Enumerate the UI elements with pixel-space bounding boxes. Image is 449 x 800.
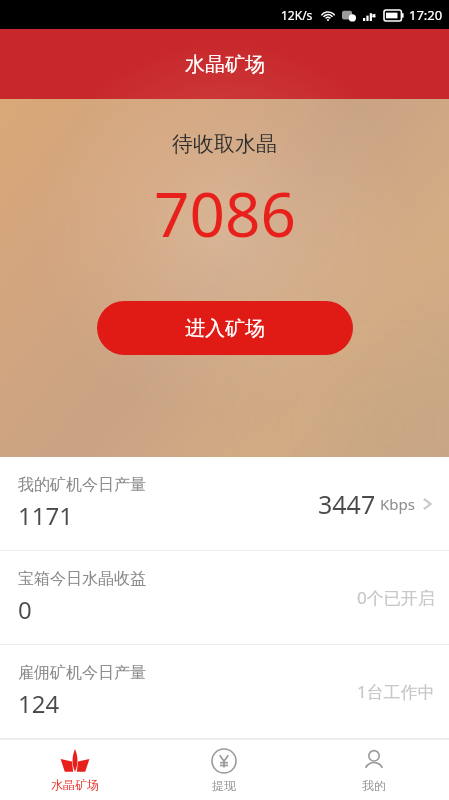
staticText: 7086 [154,171,296,255]
staticText: 我的 [362,778,386,793]
staticText: 0 [18,593,32,626]
staticText: 124 [18,687,60,720]
staticText: 1171 [18,499,73,532]
button[interactable]: 我的矿机今日产量 [0,457,449,550]
staticText: 12K/s [281,7,313,23]
button[interactable]: 宝箱今日水晶收益 [0,551,449,644]
staticText: 1台工作中 [357,680,435,703]
button[interactable]: 水晶矿场 [0,740,149,800]
staticText: 17:20 [409,6,443,24]
button[interactable]: 进入矿场 [97,301,353,355]
staticText: 待收取水晶 [172,131,277,157]
staticText: 我的矿机今日产量 [18,475,146,495]
staticText: 水晶矿场 [51,777,99,792]
staticText: 提现 [212,778,236,793]
staticText: 宝箱今日水晶收益 [18,569,146,589]
staticText: 水晶矿场 [185,52,265,77]
staticText: 0个已开启 [357,586,435,609]
button[interactable]: 雇佣矿机今日产量 [0,645,449,738]
button[interactable]: 我的 [299,740,449,800]
staticText: 雇佣矿机今日产量 [18,663,146,683]
staticText: 3447 [318,487,376,521]
staticText: Kbps [376,494,415,514]
button[interactable]: 提现 [149,740,299,800]
staticText: 进入矿场 [185,316,265,341]
